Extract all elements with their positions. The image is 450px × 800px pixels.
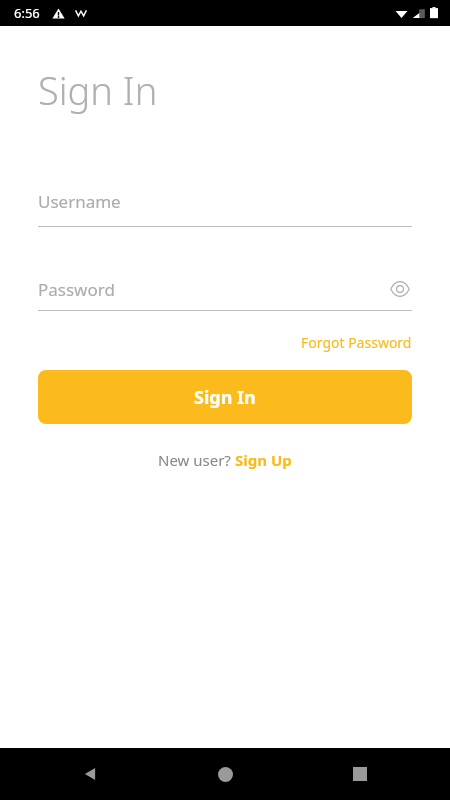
button[interactable]: Sign In — [38, 370, 412, 424]
button[interactable]: Username — [38, 190, 412, 227]
staticText: Sign In — [38, 64, 158, 116]
staticText: New user? — [158, 450, 235, 470]
staticText: Username — [38, 190, 121, 213]
staticText: Password — [38, 278, 388, 301]
button[interactable]: Forgot Password — [301, 333, 412, 352]
button[interactable]: Sign Up — [235, 450, 292, 470]
button[interactable]: Back — [70, 754, 110, 794]
button[interactable]: Home — [205, 754, 245, 794]
staticText: Sign In — [194, 385, 256, 410]
button[interactable]: Recent apps — [340, 754, 380, 794]
button[interactable]: Password — [38, 277, 412, 311]
staticText: 6:56 — [14, 4, 40, 22]
button[interactable]: Show password — [388, 277, 412, 301]
